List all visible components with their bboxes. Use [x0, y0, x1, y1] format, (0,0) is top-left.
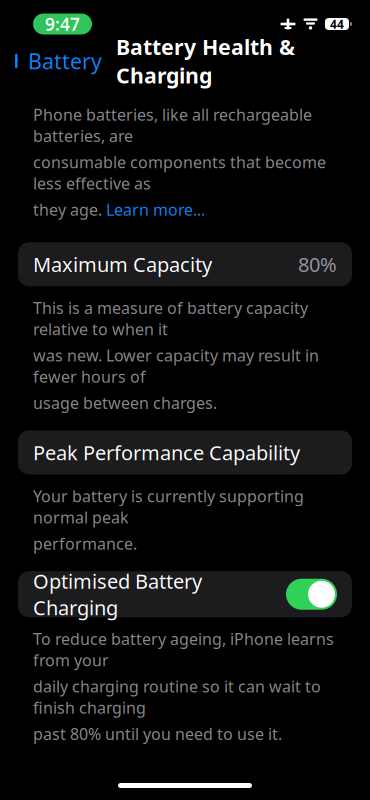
staticText: To reduce battery ageing, iPhone learns … — [33, 628, 334, 671]
staticText: Battery Health & Charging — [116, 33, 295, 89]
staticText: Learn more... — [106, 199, 205, 220]
button[interactable]: Learn more... — [106, 199, 205, 220]
staticText: 80% — [298, 251, 337, 278]
staticText: 44 — [330, 16, 344, 32]
staticText: 9:47 — [45, 12, 80, 35]
staticText: consumable components that become less e… — [33, 151, 326, 194]
staticText: was new. Lower capacity may result in fe… — [33, 345, 319, 387]
staticText: usage between charges. — [33, 392, 217, 413]
staticText: Phone batteries, like all rechargeable b… — [33, 104, 312, 146]
staticText: Battery — [28, 47, 102, 75]
staticText: Peak Performance Capability — [33, 439, 300, 466]
staticText: Your battery is currently supporting nor… — [33, 485, 304, 528]
staticText: they age. — [33, 199, 106, 220]
staticText: past 80% until you need to use it. — [33, 723, 282, 744]
staticText: performance. — [33, 533, 137, 554]
staticText: Maximum Capacity — [33, 251, 212, 278]
button[interactable]: Optimised Battery Charging — [18, 571, 352, 617]
button[interactable]: Battery — [0, 41, 102, 81]
staticText: Optimised Battery Charging — [33, 568, 202, 621]
button[interactable]: Peak Performance Capability — [18, 430, 352, 474]
button[interactable]: Maximum Capacity — [18, 242, 352, 286]
staticText: daily charging routine so it can wait to… — [33, 676, 321, 718]
staticText: This is a measure of battery capacity re… — [33, 297, 308, 340]
